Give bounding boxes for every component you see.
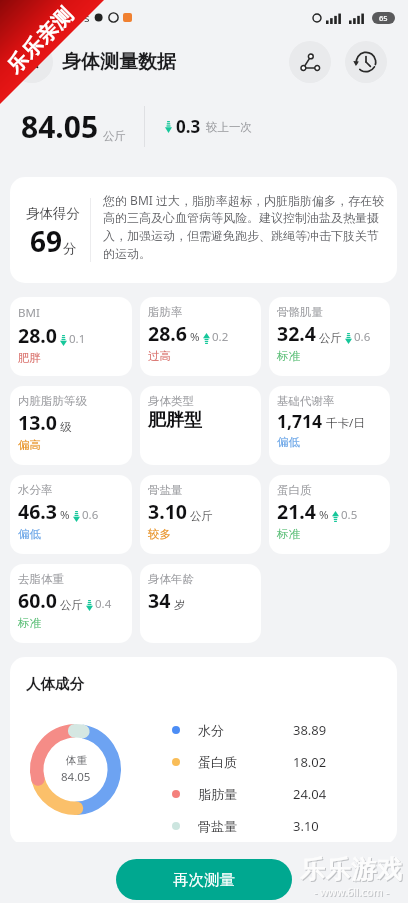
staticText: 标准: [18, 616, 41, 630]
staticText: 1.1M/s: [53, 10, 90, 26]
staticText: 公斤: [60, 598, 83, 612]
staticText: 38.89: [293, 721, 327, 739]
staticText: BMI: [18, 305, 40, 321]
button[interactable]: Share: [289, 41, 331, 83]
button[interactable]: Back: [11, 41, 53, 83]
staticText: 0.4: [95, 596, 112, 612]
button[interactable]: 去脂体重: [10, 564, 132, 643]
staticText: 0.3: [176, 115, 201, 138]
staticText: 11:28: [14, 9, 47, 26]
staticText: 0.6: [354, 329, 371, 345]
staticText: 84.05: [61, 769, 91, 785]
staticText: 24.04: [293, 785, 327, 803]
staticText: 脂肪率: [148, 305, 183, 319]
staticText: 公斤: [319, 331, 342, 345]
staticText: 级: [60, 420, 72, 434]
button[interactable]: 再次测量: [116, 859, 292, 900]
staticText: 身体类型: [148, 394, 194, 408]
button[interactable]: History: [345, 41, 387, 83]
staticText: 骨盐量: [198, 818, 237, 834]
button[interactable]: 身体得分: [10, 177, 397, 283]
staticText: 28.6: [148, 320, 187, 347]
staticText: 身体测量数据: [62, 50, 176, 74]
staticText: 蛋白质: [198, 754, 237, 770]
staticText: 偏低: [18, 527, 41, 541]
staticText: 3.10: [148, 498, 187, 525]
staticText: - www.6ll.com -: [314, 885, 389, 899]
staticText: 公斤: [190, 509, 213, 523]
button[interactable]: 身体类型: [140, 386, 261, 465]
staticText: 32.4: [277, 320, 316, 347]
staticText: 再次测量: [173, 870, 235, 890]
button[interactable]: 内脏脂肪等级: [10, 386, 132, 465]
staticText: 水分率: [18, 483, 53, 497]
staticText: 过高: [148, 349, 171, 363]
staticText: 公斤: [103, 129, 126, 143]
staticText: 偏低: [277, 435, 300, 449]
staticText: 体重: [66, 754, 87, 767]
staticText: 84.05: [21, 106, 99, 147]
staticText: 肥胖: [18, 351, 41, 365]
staticText: 人体成分: [26, 675, 84, 693]
staticText: 21.4: [277, 498, 316, 525]
staticText: 1,714: [277, 409, 323, 433]
button[interactable]: 骨盐量: [140, 475, 261, 554]
staticText: 乐乐亲测: [1, 2, 79, 79]
button[interactable]: 脂肪率: [140, 297, 261, 376]
staticText: 46.3: [18, 498, 57, 525]
button[interactable]: 水分率: [10, 475, 132, 554]
staticText: 标准: [277, 349, 300, 363]
staticText: 基础代谢率: [277, 394, 335, 408]
staticText: 千卡/日: [326, 415, 365, 431]
staticText: 肥胖型: [148, 409, 202, 432]
staticText: 偏高: [18, 438, 41, 452]
staticText: 乐乐游戏: [301, 855, 403, 886]
staticText: 0.2: [212, 329, 229, 345]
staticText: 您的 BMI 过大，脂肪率超标，内脏脂肪偏多，存在较高的三高及心血管病等风险。建…: [103, 192, 388, 262]
staticText: 水分: [198, 722, 224, 738]
button[interactable]: 基础代谢率: [269, 386, 390, 465]
staticText: 身体年龄: [148, 572, 194, 586]
button[interactable]: 骨骼肌量: [269, 297, 390, 376]
staticText: 标准: [277, 527, 300, 541]
staticText: %: [60, 507, 70, 523]
staticText: %: [190, 329, 200, 345]
staticText: 较多: [148, 527, 171, 541]
staticText: 骨盐量: [148, 483, 183, 497]
staticText: 28.0: [18, 322, 57, 349]
staticText: 65: [379, 13, 388, 23]
staticText: 乐乐游戏: [300, 854, 402, 885]
staticText: 较上一次: [206, 120, 252, 134]
staticText: 身体得分: [26, 205, 80, 222]
staticText: 34: [148, 587, 171, 614]
staticText: - www.6ll.com -: [315, 886, 390, 900]
staticText: 0.5: [341, 507, 358, 523]
staticText: 0.1: [69, 331, 86, 347]
staticText: 69: [30, 222, 63, 260]
staticText: 脂肪量: [198, 786, 237, 802]
staticText: 3.10: [293, 817, 319, 835]
staticText: 去脂体重: [18, 572, 64, 586]
staticText: 0.6: [82, 507, 99, 523]
button[interactable]: 蛋白质: [269, 475, 390, 554]
button[interactable]: 身体年龄: [140, 564, 261, 643]
staticText: 60.0: [18, 587, 57, 614]
staticText: 分: [63, 240, 77, 257]
staticText: 骨骼肌量: [277, 305, 323, 319]
staticText: 13.0: [18, 409, 57, 436]
staticText: 内脏脂肪等级: [18, 394, 87, 408]
staticText: %: [319, 507, 329, 523]
staticText: 18.02: [293, 753, 327, 771]
staticText: 岁: [174, 598, 186, 612]
button[interactable]: BMI: [10, 297, 132, 376]
staticText: 蛋白质: [277, 483, 312, 497]
